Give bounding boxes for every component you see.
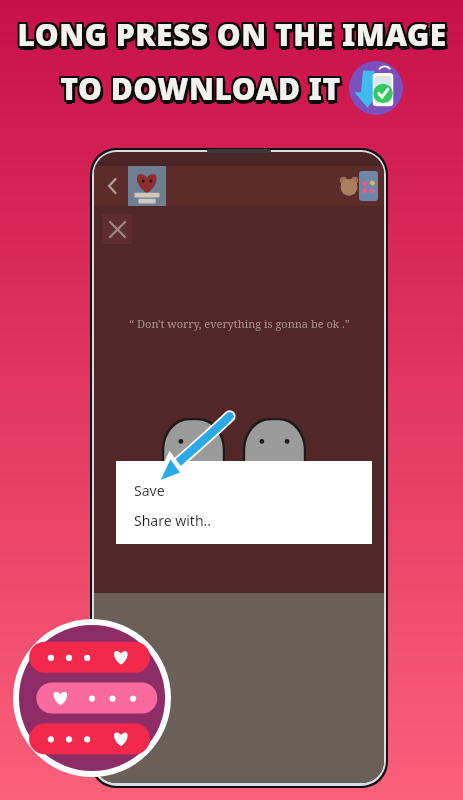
staticText: LONG PRESS ON THE IMAGE xyxy=(17,16,447,57)
staticText: Share with.. xyxy=(134,511,212,530)
staticText: TO DOWNLOAD IT xyxy=(62,70,343,111)
staticText: TO DOWNLOAD IT xyxy=(60,66,341,107)
staticText: LONG PRESS ON THE IMAGE xyxy=(15,14,445,55)
button[interactable]: Close xyxy=(102,214,132,244)
staticText: TO DOWNLOAD IT xyxy=(60,68,341,109)
staticText: TO DOWNLOAD IT xyxy=(60,70,341,111)
staticText: LONG PRESS ON THE IMAGE xyxy=(19,14,449,55)
staticText: LONG PRESS ON THE IMAGE xyxy=(19,12,449,53)
button[interactable]: Back xyxy=(100,173,126,199)
staticText: TO DOWNLOAD IT xyxy=(58,66,339,107)
staticText: TO DOWNLOAD IT xyxy=(63,71,344,112)
staticText: LONG PRESS ON THE IMAGE xyxy=(17,12,447,53)
button[interactable]: App xyxy=(359,171,378,201)
button[interactable]: Save xyxy=(134,475,372,505)
staticText: TO DOWNLOAD IT xyxy=(60,72,341,113)
button[interactable]: Share with.. xyxy=(134,505,372,535)
staticText: “ Don't worry, everything is gonna be ok… xyxy=(129,316,350,331)
staticText: TO DOWNLOAD IT xyxy=(62,68,343,109)
staticText: LONG PRESS ON THE IMAGE xyxy=(17,14,447,55)
staticText: TO DOWNLOAD IT xyxy=(58,70,339,111)
button[interactable]: Romantic Quotes app icon xyxy=(8,614,176,782)
staticText: LONG PRESS ON THE IMAGE xyxy=(19,16,449,57)
staticText: LONG PRESS ON THE IMAGE xyxy=(15,16,445,57)
staticText: TO DOWNLOAD IT xyxy=(58,68,339,109)
staticText: LONG PRESS ON THE IMAGE xyxy=(17,18,447,59)
button[interactable]: Romantic Quotes xyxy=(128,166,166,206)
staticText: LONG PRESS ON THE IMAGE xyxy=(20,17,450,58)
staticText: LONG PRESS ON THE IMAGE xyxy=(15,12,445,53)
staticText: Save xyxy=(134,481,165,500)
staticText: TO DOWNLOAD IT xyxy=(62,66,343,107)
